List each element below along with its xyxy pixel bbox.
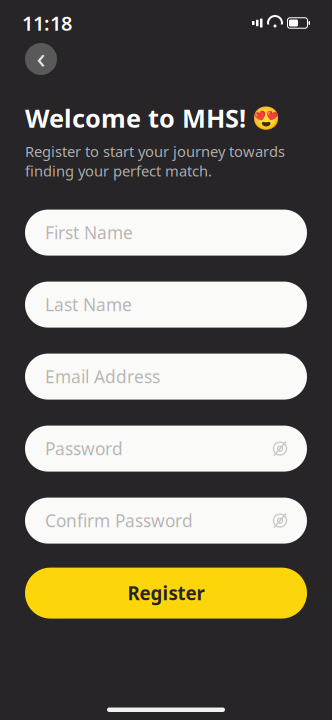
staticText: Register — [127, 581, 204, 605]
button[interactable]: Password — [25, 426, 307, 472]
staticText: Confirm Password — [45, 509, 193, 532]
staticText: ‹ — [36, 37, 45, 76]
staticText: Email Address — [45, 365, 160, 388]
button[interactable]: Register — [25, 568, 307, 619]
button[interactable]: Back — [25, 43, 57, 75]
staticText: Last Name — [45, 293, 132, 316]
button[interactable]: Confirm Password — [25, 498, 307, 544]
button[interactable]: Email Address — [25, 354, 307, 400]
button[interactable]: First Name — [25, 210, 307, 256]
button[interactable]: Last Name — [25, 282, 307, 328]
staticText: Welcome to MHS! — [25, 101, 246, 135]
staticText: 11:18 — [22, 10, 72, 36]
staticText: 😍 — [252, 105, 280, 131]
staticText: Password — [45, 437, 123, 460]
staticText: Register to start your journey towards f… — [25, 142, 285, 181]
staticText: First Name — [45, 221, 133, 244]
